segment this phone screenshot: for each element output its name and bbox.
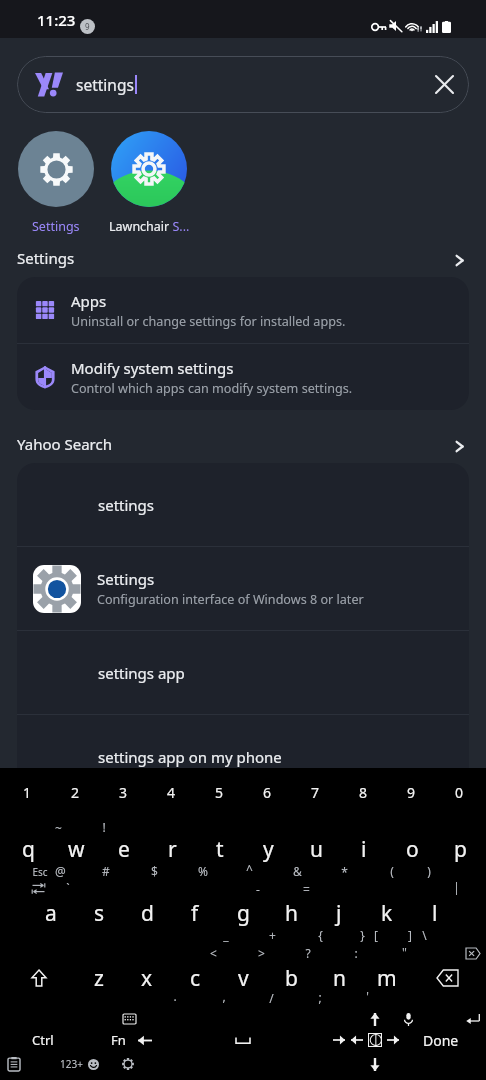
button[interactable]: Apps — [17, 277, 469, 343]
staticText: [ — [374, 927, 378, 943]
button[interactable]: settings app — [17, 631, 469, 714]
button[interactable]: 9 — [387, 770, 435, 814]
button[interactable]: Down — [362, 1053, 388, 1075]
staticText: ^ — [246, 861, 253, 877]
button[interactable]: Enter — [459, 1010, 486, 1028]
button[interactable]: Settings — [9, 131, 103, 235]
button[interactable]: Done — [413, 1022, 469, 1058]
button[interactable]: m — [363, 953, 411, 1003]
button[interactable]: g — [219, 888, 267, 938]
button[interactable]: d — [123, 888, 171, 938]
button[interactable]: l — [411, 888, 459, 938]
staticText: , — [222, 988, 226, 1004]
button[interactable]: t — [196, 824, 244, 874]
staticText: / — [269, 990, 274, 1006]
button[interactable]: z — [75, 953, 123, 1003]
button[interactable]: 5 — [195, 770, 243, 814]
button[interactable]: i — [340, 824, 388, 874]
button[interactable]: 123+ — [54, 1053, 88, 1075]
staticText: Control which apps can modify system set… — [71, 380, 353, 397]
button[interactable]: Voice input — [394, 1010, 422, 1028]
button[interactable]: Contrast — [358, 1022, 392, 1058]
staticText: Apps — [71, 291, 107, 311]
button[interactable]: a — [27, 888, 75, 938]
button[interactable]: 7 — [291, 770, 339, 814]
staticText: : — [354, 945, 358, 961]
button[interactable]: k — [363, 888, 411, 938]
staticText: Modify system settings — [71, 358, 234, 378]
staticText: s — [94, 899, 105, 928]
button[interactable]: b — [267, 953, 315, 1003]
button[interactable]: c — [171, 953, 219, 1003]
staticText: b — [285, 964, 298, 993]
staticText: * — [341, 864, 348, 880]
button[interactable]: Shift — [15, 953, 63, 1003]
button[interactable]: Fn — [94, 1022, 142, 1058]
button[interactable]: Clipboard — [2, 1053, 26, 1075]
button[interactable]: Up — [361, 1010, 389, 1028]
button[interactable]: 1 — [3, 770, 51, 814]
button[interactable]: r — [148, 824, 196, 874]
button[interactable]: Settings — [17, 547, 469, 630]
button[interactable]: Emoji — [82, 1053, 104, 1075]
button[interactable]: 8 — [339, 770, 387, 814]
button[interactable]: o — [388, 824, 436, 874]
button[interactable]: Right arrow — [376, 1022, 410, 1058]
staticText: w — [68, 835, 85, 864]
button[interactable]: 6 — [243, 770, 291, 814]
button[interactable]: Modify system settings — [17, 344, 469, 410]
button[interactable]: e — [100, 824, 148, 874]
button[interactable]: v — [219, 953, 267, 1003]
staticText: _ — [223, 927, 229, 943]
staticText: h — [285, 899, 298, 928]
staticText: q — [22, 835, 35, 864]
staticText: settings app — [98, 663, 185, 683]
button[interactable]: u — [292, 824, 340, 874]
staticText: < — [210, 945, 217, 961]
button[interactable]: s — [75, 888, 123, 938]
button[interactable]: p — [436, 824, 484, 874]
staticText: ` — [66, 880, 70, 896]
button[interactable]: Keyboard layout — [115, 1010, 143, 1028]
button[interactable]: Backspace — [423, 953, 471, 1003]
button[interactable]: x — [123, 953, 171, 1003]
staticText: v — [238, 964, 249, 993]
button[interactable]: Clear search — [422, 62, 467, 107]
staticText: 123+ — [60, 1057, 83, 1071]
button[interactable]: 4 — [147, 770, 195, 814]
button[interactable]: Yahoo Search — [0, 430, 486, 463]
button[interactable]: Left — [128, 1022, 162, 1058]
staticText: 9 — [85, 21, 90, 32]
staticText: d — [141, 899, 154, 928]
button[interactable]: j — [315, 888, 363, 938]
button[interactable]: y — [244, 824, 292, 874]
button[interactable]: 3 — [99, 770, 147, 814]
button[interactable]: settings — [17, 463, 469, 546]
button[interactable]: settings — [17, 56, 469, 113]
button[interactable]: Ctrl — [19, 1022, 67, 1058]
staticText: j — [336, 899, 342, 928]
staticText: Lawnchair S... — [109, 218, 190, 235]
button[interactable]: w — [52, 824, 100, 874]
button[interactable]: h — [267, 888, 315, 938]
button[interactable]: Tab right — [322, 1022, 356, 1058]
staticText: ; — [318, 989, 322, 1005]
button[interactable]: f — [171, 888, 219, 938]
button[interactable]: q — [4, 824, 52, 874]
button[interactable]: 0 — [435, 770, 483, 814]
button[interactable]: settings app on my phone — [17, 715, 469, 798]
staticText: settings app on my phone — [98, 747, 282, 767]
staticText: 6 — [263, 783, 272, 802]
button[interactable]: Settings — [0, 244, 486, 277]
button[interactable]: Lawnchair S... — [102, 131, 196, 235]
staticText: 7 — [311, 783, 320, 802]
staticText: ] — [408, 927, 412, 943]
staticText: p — [454, 835, 467, 864]
staticText: settings — [76, 74, 134, 95]
button[interactable]: 2 — [51, 770, 99, 814]
button[interactable]: Space — [180, 1022, 306, 1058]
button[interactable]: Left arrow — [340, 1022, 374, 1058]
button[interactable]: Settings — [117, 1053, 139, 1075]
staticText: & — [293, 863, 302, 879]
button[interactable]: n — [315, 953, 363, 1003]
